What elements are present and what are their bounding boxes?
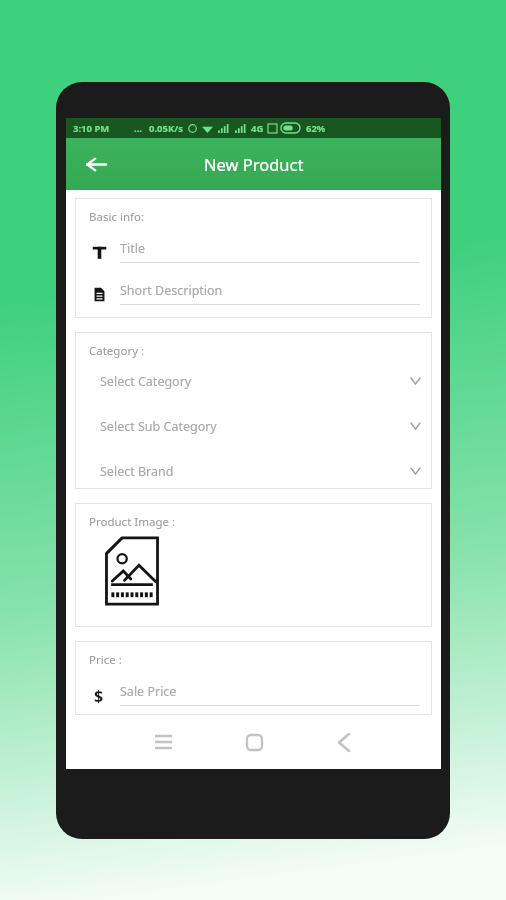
staticText: Category : xyxy=(89,343,145,359)
staticText: 0.05K/s xyxy=(149,122,183,135)
staticText: Select Brand xyxy=(100,463,174,480)
button[interactable]: Select Brand xyxy=(100,462,420,480)
staticText: Select Category xyxy=(100,373,192,390)
staticText: Short Description xyxy=(120,282,223,299)
button[interactable]: Select Sub Category xyxy=(100,417,420,435)
staticText: 62% xyxy=(306,122,326,135)
button[interactable]: Back xyxy=(79,147,113,181)
button[interactable]: $ xyxy=(89,679,420,710)
button[interactable]: Back xyxy=(299,720,389,764)
staticText: 4G xyxy=(251,122,264,135)
button[interactable]: Pick product image xyxy=(103,535,163,609)
staticText: Select Sub Category xyxy=(100,418,217,435)
staticText: $ xyxy=(94,685,104,705)
button[interactable]: Select Category xyxy=(100,372,420,390)
staticText: Basic info: xyxy=(89,209,144,225)
staticText: Product Image : xyxy=(89,514,176,530)
button[interactable]: Home xyxy=(209,720,299,764)
staticText: New Product xyxy=(204,153,304,175)
staticText: 3:10 PM xyxy=(73,122,110,135)
button[interactable]: Title xyxy=(89,236,420,267)
staticText: Sale Price xyxy=(120,683,177,700)
staticText: Title xyxy=(120,240,145,257)
button[interactable]: Recents xyxy=(118,720,209,764)
staticText: ... xyxy=(134,122,143,135)
staticText: Price : xyxy=(89,652,122,668)
button[interactable]: Short Description xyxy=(89,278,420,309)
